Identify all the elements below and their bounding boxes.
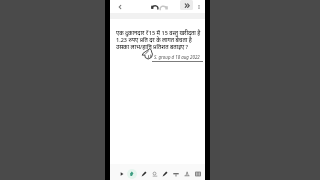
button[interactable]: Highlighter	[127, 169, 137, 179]
button[interactable]: Redo	[159, 2, 168, 12]
button[interactable]: Select tool	[117, 169, 127, 179]
button[interactable]: Marker	[160, 169, 170, 179]
button[interactable]: More options	[195, 2, 203, 12]
staticText: एक दुकानदार ₹15 में 15 वस्तु खरीदता है 1…	[116, 29, 205, 50]
button[interactable]: More tools	[193, 169, 203, 179]
button[interactable]: Pen	[139, 169, 149, 179]
button[interactable]: Back	[116, 2, 124, 12]
button[interactable]: Eraser	[150, 169, 160, 179]
button[interactable]: Next	[180, 0, 193, 10]
button[interactable]: Shapes	[182, 169, 192, 179]
button[interactable]: Undo	[151, 2, 159, 12]
button[interactable]: Ruler	[171, 169, 181, 179]
staticText: S. group d 18 aug 2022	[154, 54, 200, 60]
